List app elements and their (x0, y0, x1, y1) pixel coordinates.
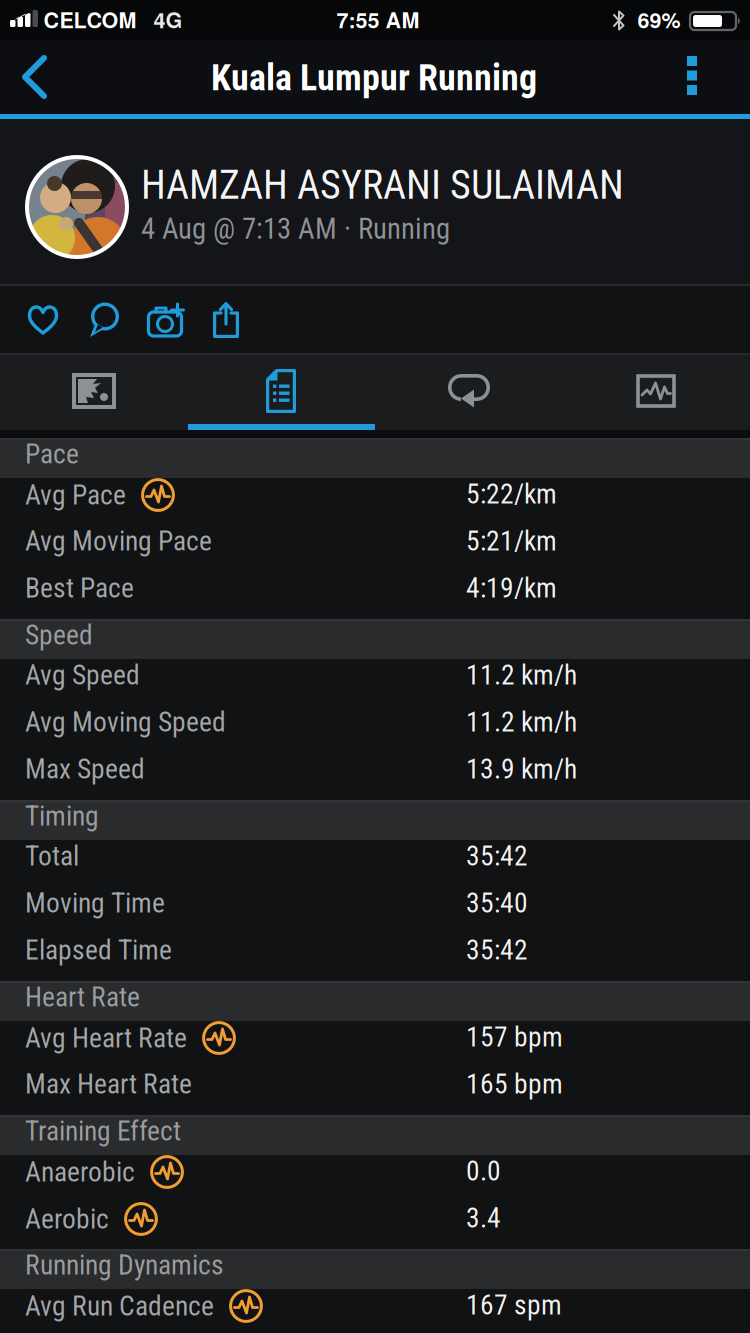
button[interactable]: Aerobic (0, 1202, 750, 1249)
staticText: Elapsed Time (25, 934, 172, 966)
button[interactable]: Back (4, 40, 68, 114)
button[interactable]: Avg Pace (0, 478, 750, 525)
staticText: 3.4 (466, 1202, 501, 1234)
staticText: 35:42 (466, 934, 528, 966)
staticText: Avg Speed (25, 659, 140, 691)
staticText: Training Effect (25, 1115, 181, 1147)
staticText: 5:21/km (466, 525, 557, 557)
staticText: Avg Moving Pace (25, 525, 212, 557)
staticText: 35:40 (466, 887, 528, 919)
staticText: 13.9 km/h (466, 753, 577, 785)
staticText: Anaerobic (25, 1156, 135, 1188)
button[interactable]: Comment (77, 292, 133, 348)
staticText: Kuala Lumpur Running (211, 57, 537, 99)
staticText: 4G (153, 4, 182, 35)
button[interactable]: Photos and map (0, 356, 187, 425)
staticText: Max Heart Rate (25, 1068, 192, 1100)
staticText: Avg Moving Speed (25, 706, 226, 738)
staticText: 11.2 km/h (466, 659, 577, 691)
staticText: 35:42 (466, 840, 528, 872)
button[interactable]: Avg Run Cadence (0, 1289, 750, 1333)
staticText: Running Dynamics (25, 1249, 224, 1281)
staticText: 4:19/km (466, 572, 557, 604)
staticText: Avg Pace (25, 479, 126, 511)
staticText: HAMZAH ASYRANI SULAIMAN (141, 162, 624, 208)
staticText: 5:22/km (466, 478, 557, 510)
staticText: 157 bpm (466, 1021, 563, 1053)
staticText: 165 bpm (466, 1068, 563, 1100)
button[interactable]: Share (198, 292, 254, 348)
staticText: 4 Aug @ 7:13 AM · Running (141, 212, 450, 246)
staticText: Pace (25, 438, 79, 470)
button[interactable]: Charts (562, 356, 749, 425)
button[interactable]: Avg Heart Rate (0, 1021, 750, 1068)
staticText: CELCOM (43, 4, 136, 35)
button[interactable]: Like (15, 292, 71, 348)
button[interactable]: Anaerobic (0, 1155, 750, 1202)
staticText: Aerobic (25, 1203, 109, 1235)
staticText: Heart Rate (25, 981, 140, 1013)
staticText: 7:55 AM (336, 4, 419, 35)
staticText: Total (25, 840, 79, 872)
staticText: 11.2 km/h (466, 706, 577, 738)
staticText: Avg Run Cadence (25, 1290, 214, 1322)
button[interactable]: Stats (187, 356, 374, 425)
staticText: Timing (25, 800, 99, 832)
staticText: 0.0 (466, 1155, 501, 1187)
staticText: Speed (25, 619, 93, 651)
button[interactable]: Laps (375, 356, 562, 425)
staticText: Max Speed (25, 753, 145, 785)
staticText: Moving Time (25, 887, 165, 919)
staticText: 167 spm (466, 1289, 562, 1321)
button[interactable]: Add photo (138, 292, 194, 348)
staticText: 69% (637, 4, 680, 35)
button[interactable]: More options (664, 40, 720, 114)
staticText: Best Pace (25, 572, 134, 604)
staticText: Avg Heart Rate (25, 1022, 187, 1054)
